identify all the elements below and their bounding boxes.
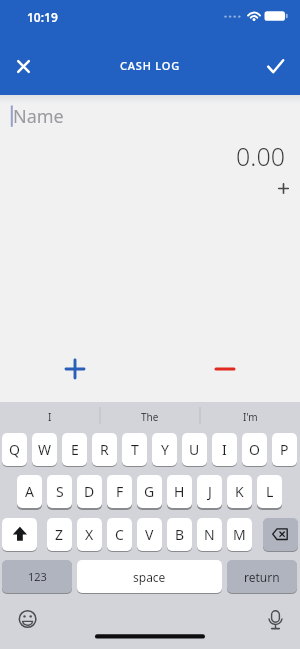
staticText: Q [9, 440, 20, 459]
staticText: 0.00 [236, 139, 285, 171]
button[interactable] [2, 518, 37, 551]
button[interactable] [51, 345, 99, 393]
button[interactable]: space [77, 560, 222, 593]
staticText: D [84, 482, 95, 501]
staticText: 10:19 [27, 9, 58, 25]
staticText: N [204, 525, 215, 544]
button[interactable]: V [137, 518, 162, 551]
staticText: R [100, 440, 109, 459]
button[interactable]: I [0, 403, 100, 430]
staticText: V [145, 525, 154, 544]
staticText: J [208, 482, 212, 501]
button[interactable]: G [137, 475, 162, 508]
staticText: I [222, 440, 227, 459]
staticText: E [71, 440, 79, 459]
button[interactable] [0, 97, 300, 135]
staticText: H [174, 482, 185, 501]
button[interactable]: J [197, 475, 222, 508]
button[interactable]: Z [47, 518, 72, 551]
button[interactable]: U [182, 433, 207, 466]
staticText: 123 [28, 569, 47, 584]
button[interactable]: E [62, 433, 87, 466]
button[interactable]: N [197, 518, 222, 551]
button[interactable]: B [167, 518, 192, 551]
staticText: M [233, 525, 246, 544]
button[interactable]: C [107, 518, 132, 551]
button[interactable]: L [257, 475, 282, 508]
button[interactable]: T [122, 433, 147, 466]
staticText: K [235, 482, 244, 501]
button[interactable]: P [272, 433, 297, 466]
button[interactable]: Y [152, 433, 177, 466]
button[interactable] [261, 604, 291, 634]
staticText: return [244, 569, 280, 585]
staticText: S [56, 482, 64, 501]
staticText: B [175, 525, 185, 544]
button[interactable]: I [212, 433, 237, 466]
button[interactable]: R [92, 433, 117, 466]
staticText: CASH LOG [0, 58, 300, 73]
staticText: C [115, 525, 124, 544]
button[interactable]: W [32, 433, 57, 466]
staticText: F [116, 482, 124, 501]
button[interactable] [6, 49, 41, 84]
button[interactable]: S [47, 475, 72, 508]
staticText: G [144, 482, 155, 501]
button[interactable]: K [227, 475, 252, 508]
staticText: I [48, 410, 52, 424]
staticText: U [189, 440, 200, 459]
staticText: Z [55, 525, 64, 544]
button[interactable] [258, 49, 293, 84]
button[interactable]: X [77, 518, 102, 551]
staticText: I'm [243, 410, 258, 424]
staticText: P [280, 440, 289, 459]
staticText: Y [161, 440, 169, 459]
staticText: L [266, 482, 274, 501]
staticText: The [141, 410, 159, 424]
button[interactable] [263, 518, 298, 551]
button[interactable]: Q [2, 433, 27, 466]
button[interactable]: H [167, 475, 192, 508]
button[interactable]: The [100, 403, 200, 430]
button[interactable] [201, 345, 249, 393]
staticText: X [85, 525, 94, 544]
button[interactable]: 123 [2, 560, 72, 593]
staticText: A [25, 482, 34, 501]
button[interactable]: I'm [200, 403, 300, 430]
staticText: W [38, 440, 52, 459]
button[interactable] [269, 174, 298, 203]
button[interactable]: 0.00 [145, 139, 285, 171]
staticText: space [133, 569, 166, 585]
button[interactable]: D [77, 475, 102, 508]
button[interactable]: return [227, 560, 297, 593]
button[interactable] [13, 604, 43, 634]
button[interactable]: F [107, 475, 132, 508]
button[interactable]: M [227, 518, 252, 551]
staticText: Name [13, 104, 64, 129]
staticText: T [131, 440, 139, 459]
button[interactable]: O [242, 433, 267, 466]
staticText: O [249, 440, 260, 459]
button[interactable]: A [17, 475, 42, 508]
